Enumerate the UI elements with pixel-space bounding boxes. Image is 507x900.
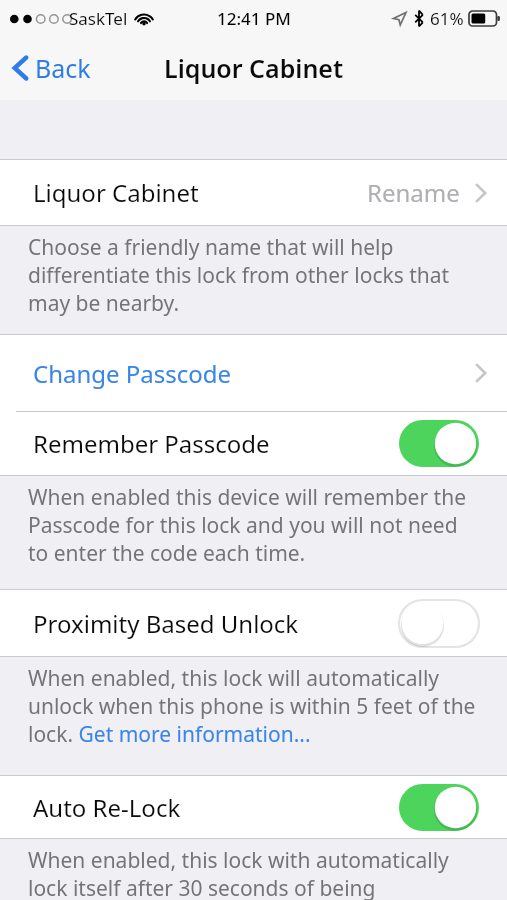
- button[interactable]: Liquor Cabinet: [0, 160, 507, 225]
- button[interactable]: Change Passcode: [0, 335, 507, 411]
- staticText: When enabled, this lock with automatical…: [28, 846, 481, 900]
- button[interactable]: On: [399, 784, 479, 831]
- staticText: Remember Passcode: [33, 427, 270, 460]
- staticText: Back: [35, 51, 91, 85]
- staticText: SaskTel: [69, 7, 128, 30]
- staticText: Liquor Cabinet: [164, 51, 344, 85]
- staticText: Liquor Cabinet: [33, 176, 199, 209]
- staticText: 12:41 PM: [217, 7, 291, 30]
- staticText: Rename: [367, 176, 460, 209]
- staticText: When enabled this device will remember t…: [28, 483, 481, 567]
- staticText: Change Passcode: [33, 357, 232, 390]
- button[interactable]: Auto Re-Lock: [0, 776, 507, 838]
- button[interactable]: Proximity Based Unlock: [0, 590, 507, 656]
- staticText: Auto Re-Lock: [33, 791, 181, 824]
- button[interactable]: Remember Passcode: [0, 412, 507, 475]
- button[interactable]: Off: [399, 600, 479, 647]
- staticText: 61%: [430, 7, 464, 30]
- staticText: Proximity Based Unlock: [33, 607, 299, 640]
- button[interactable]: Back: [0, 43, 105, 93]
- button[interactable]: On: [399, 420, 479, 467]
- staticText: When enabled, this lock will automatical…: [28, 664, 485, 748]
- staticText: Choose a friendly name that will help di…: [28, 233, 481, 317]
